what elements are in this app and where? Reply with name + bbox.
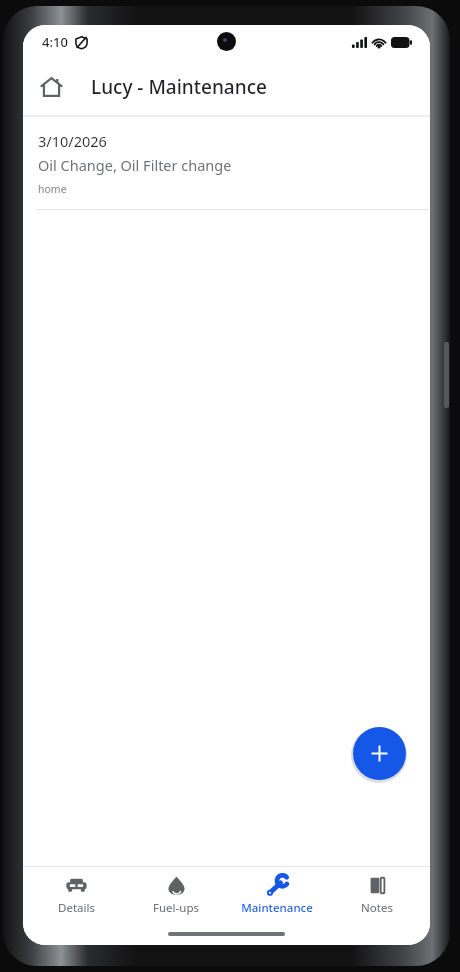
- staticText: 3/10/2026: [38, 131, 107, 151]
- staticText: Fuel-ups: [153, 900, 199, 916]
- staticText: home: [38, 182, 67, 196]
- button[interactable]: Add maintenance record: [353, 727, 406, 780]
- staticText: Maintenance: [241, 900, 313, 916]
- button[interactable]: Maintenance: [229, 870, 325, 921]
- button[interactable]: Fuel-ups: [128, 870, 224, 921]
- button[interactable]: 3/10/2026: [23, 118, 430, 210]
- button[interactable]: Details: [28, 870, 124, 921]
- staticText: Details: [58, 900, 95, 916]
- button[interactable]: Notes: [329, 870, 425, 921]
- staticText: 4:10: [42, 33, 68, 51]
- staticText: Lucy - Maintenance: [91, 74, 267, 100]
- button[interactable]: Home: [29, 65, 73, 109]
- staticText: Notes: [361, 900, 393, 916]
- staticText: Oil Change, Oil Filter change: [38, 155, 232, 175]
